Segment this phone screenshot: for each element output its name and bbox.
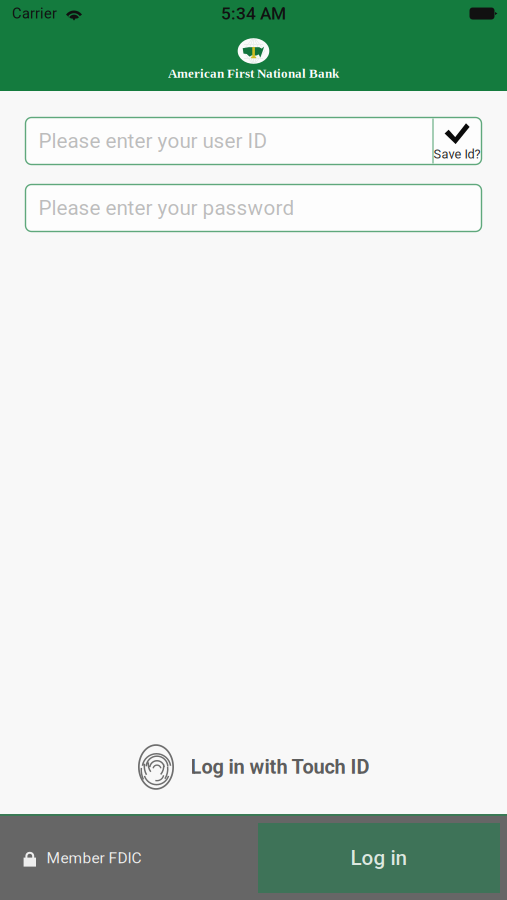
staticText: Log in with Touch ID — [190, 755, 369, 779]
staticText: American First National Bank — [168, 66, 339, 80]
staticText: Save Id? — [433, 146, 480, 161]
staticText: Please enter your user ID — [38, 129, 267, 153]
button[interactable]: Please enter your user ID — [25, 117, 481, 164]
button[interactable]: Log in — [258, 823, 500, 893]
staticText: Member FDIC — [47, 849, 142, 867]
staticText: 5:34 AM — [221, 3, 286, 24]
staticText: Carrier — [12, 5, 57, 22]
button[interactable]: Log in with Touch ID — [137, 744, 369, 790]
button[interactable]: Please enter your password — [25, 184, 481, 231]
staticText: Log in — [350, 846, 407, 870]
staticText: Please enter your password — [38, 196, 294, 220]
